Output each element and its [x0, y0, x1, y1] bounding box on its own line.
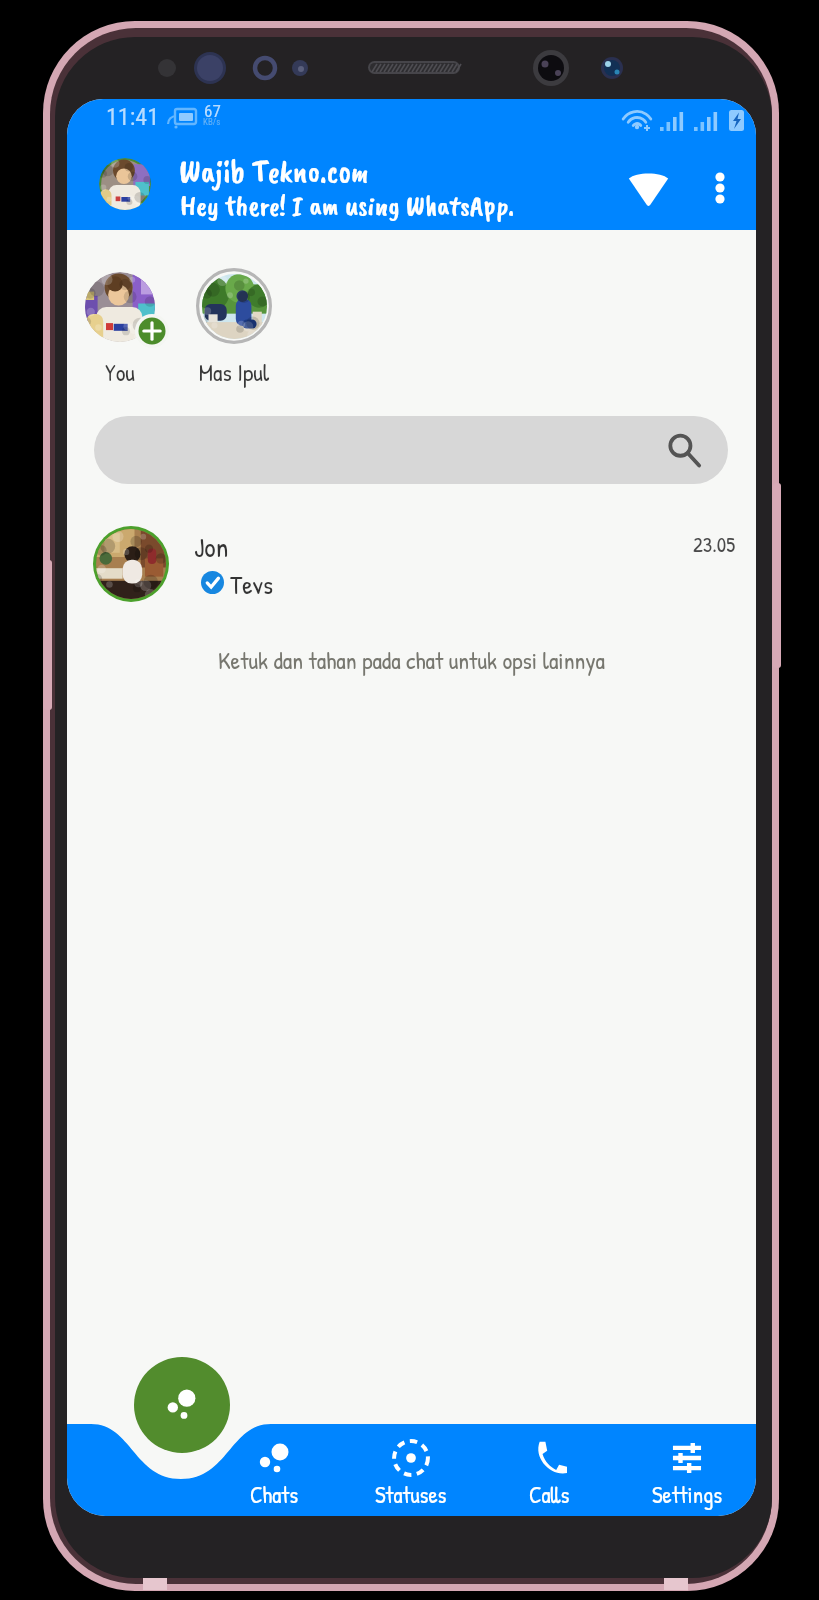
button[interactable]: You	[67, 263, 173, 393]
staticText: Statuses	[375, 1479, 447, 1510]
button[interactable]: Settings	[627, 1426, 747, 1516]
staticText: Ketuk dan tahan pada chat untuk opsi lai…	[67, 644, 756, 676]
button[interactable]: Chats	[214, 1426, 334, 1516]
staticText: Chats	[250, 1479, 299, 1510]
button[interactable]: Profile photo	[99, 158, 151, 210]
staticText: Jon	[194, 528, 229, 566]
button[interactable]: Mas Ipul	[174, 261, 294, 393]
staticText: Settings	[652, 1479, 723, 1510]
staticText: KB/s	[203, 117, 221, 128]
staticText: 11:41	[106, 103, 159, 131]
staticText: 23.05	[693, 530, 736, 558]
staticText: Calls	[529, 1479, 570, 1510]
button[interactable]: New chat	[134, 1357, 230, 1453]
staticText: You	[67, 356, 173, 388]
button[interactable]: Statuses	[351, 1426, 471, 1516]
staticText: Mas Ipul	[174, 356, 294, 388]
button[interactable]: Search	[94, 416, 728, 484]
button[interactable]: Status	[608, 152, 688, 224]
button[interactable]: Jon	[67, 514, 756, 622]
button[interactable]: More options	[688, 152, 752, 224]
button[interactable]: Calls	[489, 1426, 609, 1516]
staticText: 67	[204, 101, 221, 121]
staticText: Wajib Tekno.com	[179, 150, 370, 192]
staticText: Hey there! I am using WhatsApp.	[180, 187, 514, 224]
staticText: Tevs	[230, 567, 273, 602]
